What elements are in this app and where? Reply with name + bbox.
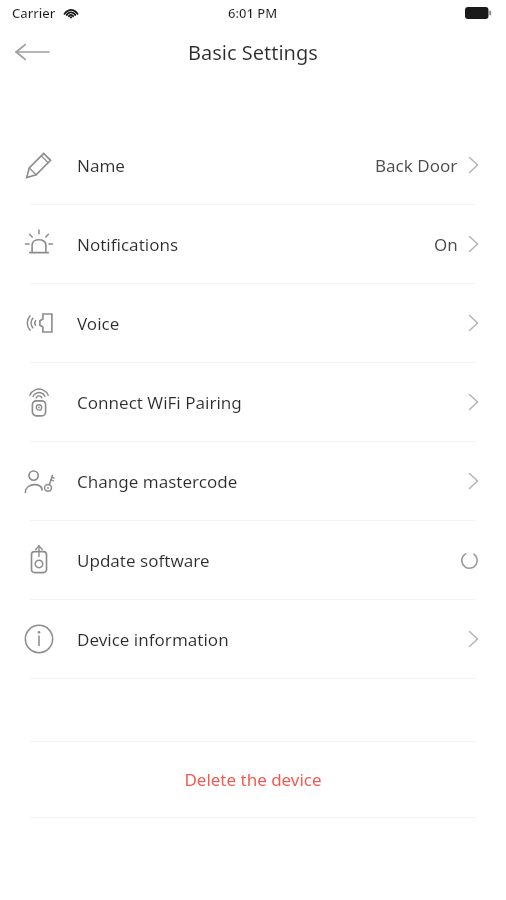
staticText: Back Door (375, 154, 458, 177)
button[interactable]: Device information (0, 600, 506, 678)
button[interactable]: Voice (0, 284, 506, 362)
staticText: Notifications (77, 233, 179, 256)
staticText: Device information (77, 628, 229, 651)
button[interactable]: Back (8, 28, 56, 76)
button[interactable]: Change mastercode (0, 442, 506, 520)
staticText: Carrier (12, 4, 56, 22)
staticText: Change mastercode (77, 470, 238, 493)
staticText: Delete the device (184, 768, 322, 791)
button[interactable]: Update software (0, 521, 506, 599)
staticText: Basic Settings (188, 39, 318, 66)
button[interactable]: Name (0, 126, 506, 204)
button[interactable]: Notifications (0, 205, 506, 283)
staticText: Name (77, 154, 125, 177)
staticText: 6:01 PM (228, 4, 278, 22)
button[interactable]: Connect WiFi Pairing (0, 363, 506, 441)
staticText: Voice (77, 312, 120, 335)
button[interactable]: Delete the device (0, 742, 506, 817)
staticText: On (434, 233, 458, 256)
staticText: Connect WiFi Pairing (77, 391, 242, 414)
staticText: Update software (77, 549, 210, 572)
